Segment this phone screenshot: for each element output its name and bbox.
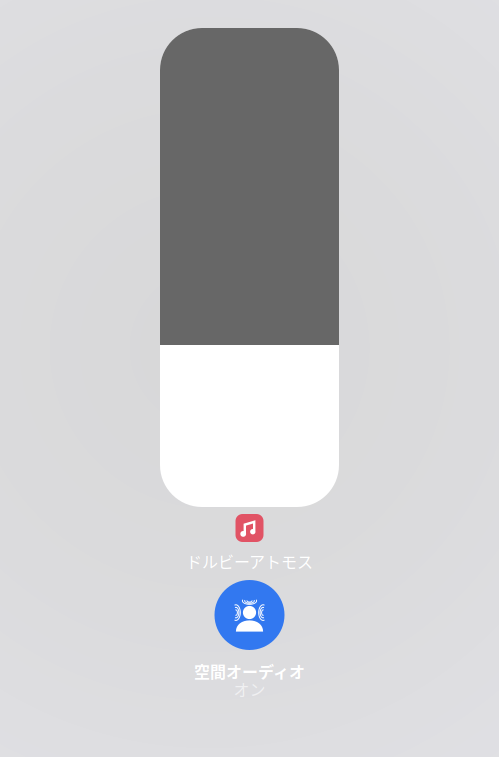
button[interactable]: Spatial Audio [214, 580, 284, 650]
staticText: 空間オーディオ [194, 659, 305, 683]
staticText: ドルビーアトモス [186, 549, 313, 573]
staticText: オン [233, 677, 265, 701]
button[interactable]: Volume [160, 28, 339, 507]
